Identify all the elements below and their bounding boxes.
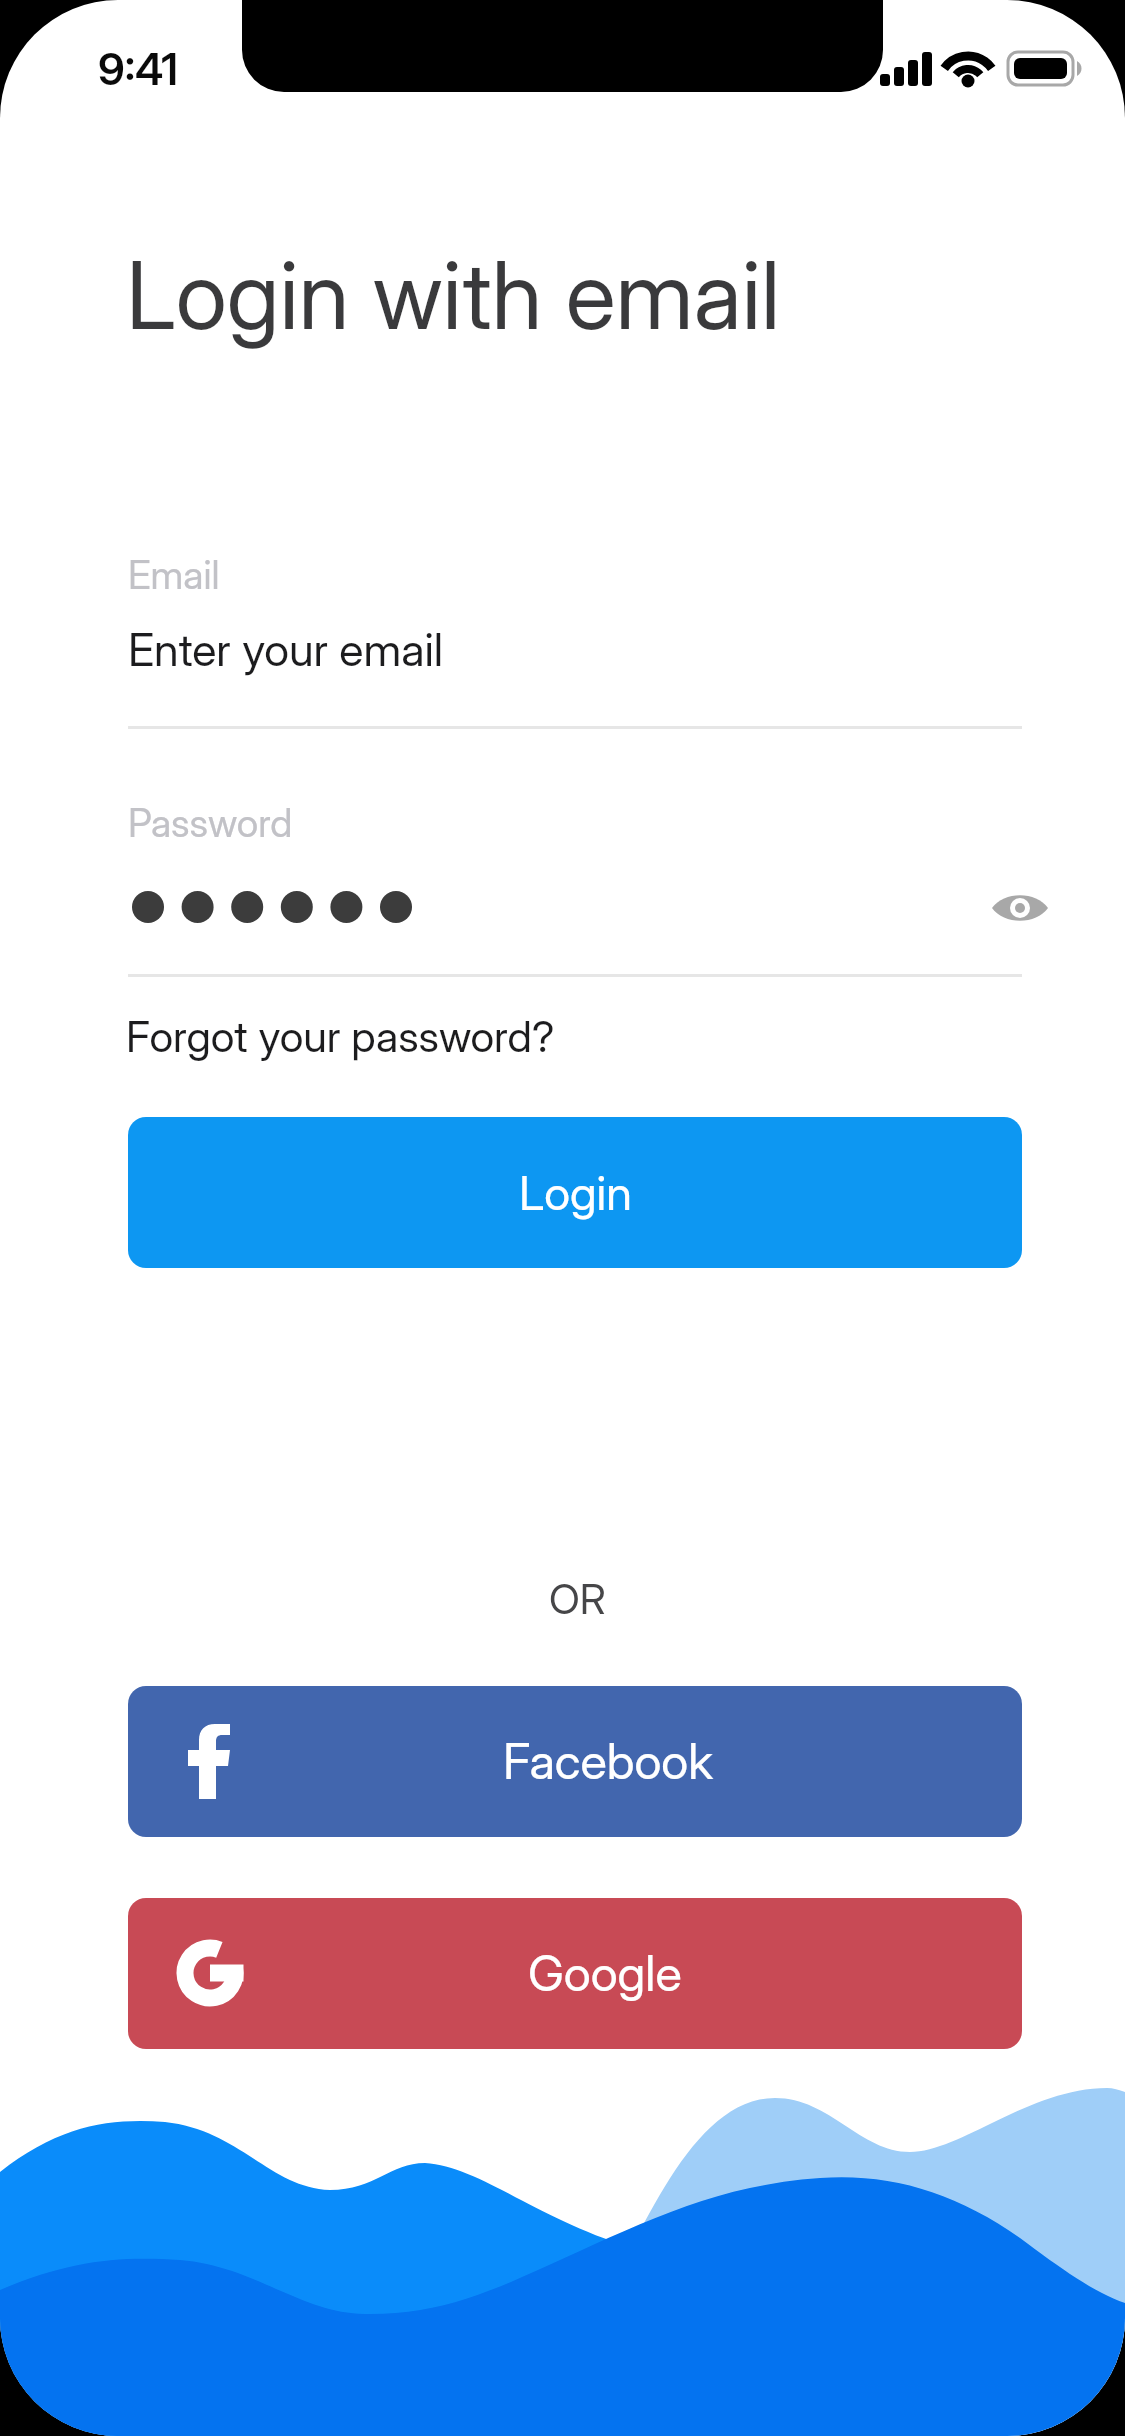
staticText: OR (549, 1574, 606, 1624)
staticText: 9:41 (98, 42, 179, 95)
button[interactable]: Google (128, 1898, 1022, 2049)
staticText: Email (128, 551, 220, 598)
staticText: Login with email (126, 239, 781, 352)
staticText: Login (519, 1164, 632, 1221)
button[interactable]: Enter your email (128, 612, 1022, 692)
button[interactable]: Login (128, 1117, 1022, 1268)
staticText: Facebook (503, 1732, 714, 1791)
button[interactable]: Facebook (128, 1686, 1022, 1837)
staticText: Enter your email (128, 622, 444, 676)
button[interactable] (128, 870, 1022, 950)
staticText: Password (128, 799, 293, 846)
staticText: Google (528, 1944, 682, 2003)
staticText: Forgot your password? (126, 1010, 555, 1062)
button[interactable]: Forgot your password? (126, 1000, 555, 1052)
